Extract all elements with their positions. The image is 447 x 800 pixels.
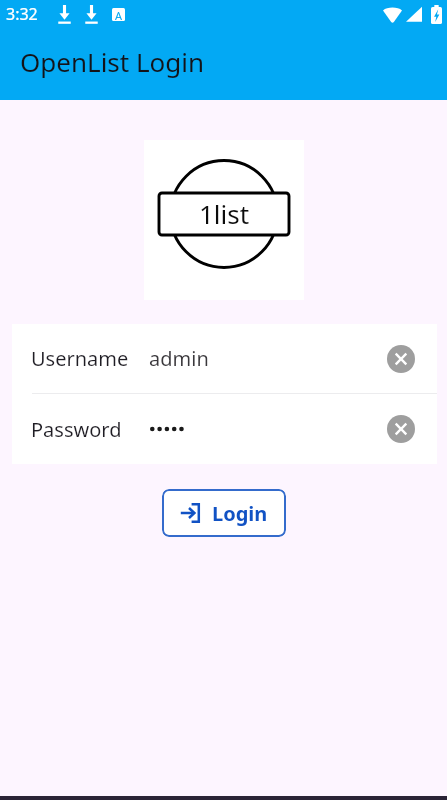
staticText: A — [115, 8, 123, 21]
staticText: OpenList Login — [20, 44, 205, 79]
staticText: 3:32 — [6, 3, 38, 25]
button[interactable]: Username — [12, 324, 437, 393]
button[interactable]: Clear text — [387, 345, 415, 373]
button[interactable]: Login — [162, 489, 286, 537]
staticText: admin — [149, 345, 209, 372]
button[interactable]: Clear text — [387, 415, 415, 443]
button[interactable]: Password — [12, 394, 437, 464]
staticText: Login — [212, 500, 268, 527]
staticText: Password — [31, 416, 122, 443]
staticText: 1list — [199, 196, 250, 231]
staticText: Username — [31, 345, 129, 372]
